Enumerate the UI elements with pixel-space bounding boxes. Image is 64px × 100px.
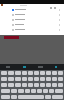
- button[interactable]: [15, 83, 21, 87]
- button[interactable]: [18, 95, 44, 99]
- button[interactable]: [22, 71, 27, 75]
- button[interactable]: [48, 64, 64, 70]
- button[interactable]: [46, 77, 51, 81]
- button[interactable]: [22, 77, 27, 81]
- button[interactable]: [28, 71, 33, 75]
- button[interactable]: [52, 83, 57, 87]
- button[interactable]: [34, 71, 39, 75]
- button[interactable]: [18, 89, 24, 93]
- button[interactable]: [45, 95, 51, 99]
- button[interactable]: [8, 83, 14, 87]
- button[interactable]: [40, 71, 45, 75]
- button[interactable]: [25, 89, 30, 93]
- button[interactable]: [55, 89, 63, 93]
- button[interactable]: [43, 89, 48, 93]
- button[interactable]: [40, 77, 45, 81]
- button[interactable]: [49, 89, 54, 93]
- button[interactable]: [46, 83, 51, 87]
- button[interactable]: [32, 64, 48, 70]
- button[interactable]: [0, 22, 64, 27]
- button[interactable]: [34, 83, 39, 87]
- button[interactable]: [11, 89, 17, 93]
- button[interactable]: [40, 83, 45, 87]
- button[interactable]: [15, 71, 21, 75]
- button[interactable]: [58, 77, 63, 81]
- button[interactable]: [52, 95, 63, 99]
- button[interactable]: [1, 89, 10, 93]
- button[interactable]: [58, 83, 63, 87]
- button[interactable]: [1, 71, 7, 75]
- button[interactable]: [37, 89, 42, 93]
- button[interactable]: [11, 95, 17, 99]
- button[interactable]: [34, 77, 39, 81]
- button[interactable]: [0, 12, 64, 17]
- button[interactable]: [46, 71, 51, 75]
- button[interactable]: [31, 89, 36, 93]
- button[interactable]: [0, 7, 64, 12]
- button[interactable]: [1, 95, 10, 99]
- button[interactable]: [22, 83, 27, 87]
- button[interactable]: [58, 71, 63, 75]
- button[interactable]: [52, 77, 57, 81]
- button[interactable]: [1, 77, 7, 81]
- button[interactable]: [0, 64, 16, 70]
- button[interactable]: [28, 77, 33, 81]
- button[interactable]: [8, 71, 14, 75]
- button[interactable]: [15, 77, 21, 81]
- button[interactable]: [52, 71, 57, 75]
- button[interactable]: [0, 17, 64, 22]
- button[interactable]: [0, 27, 64, 32]
- button[interactable]: [28, 83, 33, 87]
- button[interactable]: [16, 64, 32, 70]
- button[interactable]: [1, 83, 7, 87]
- button[interactable]: [8, 77, 14, 81]
